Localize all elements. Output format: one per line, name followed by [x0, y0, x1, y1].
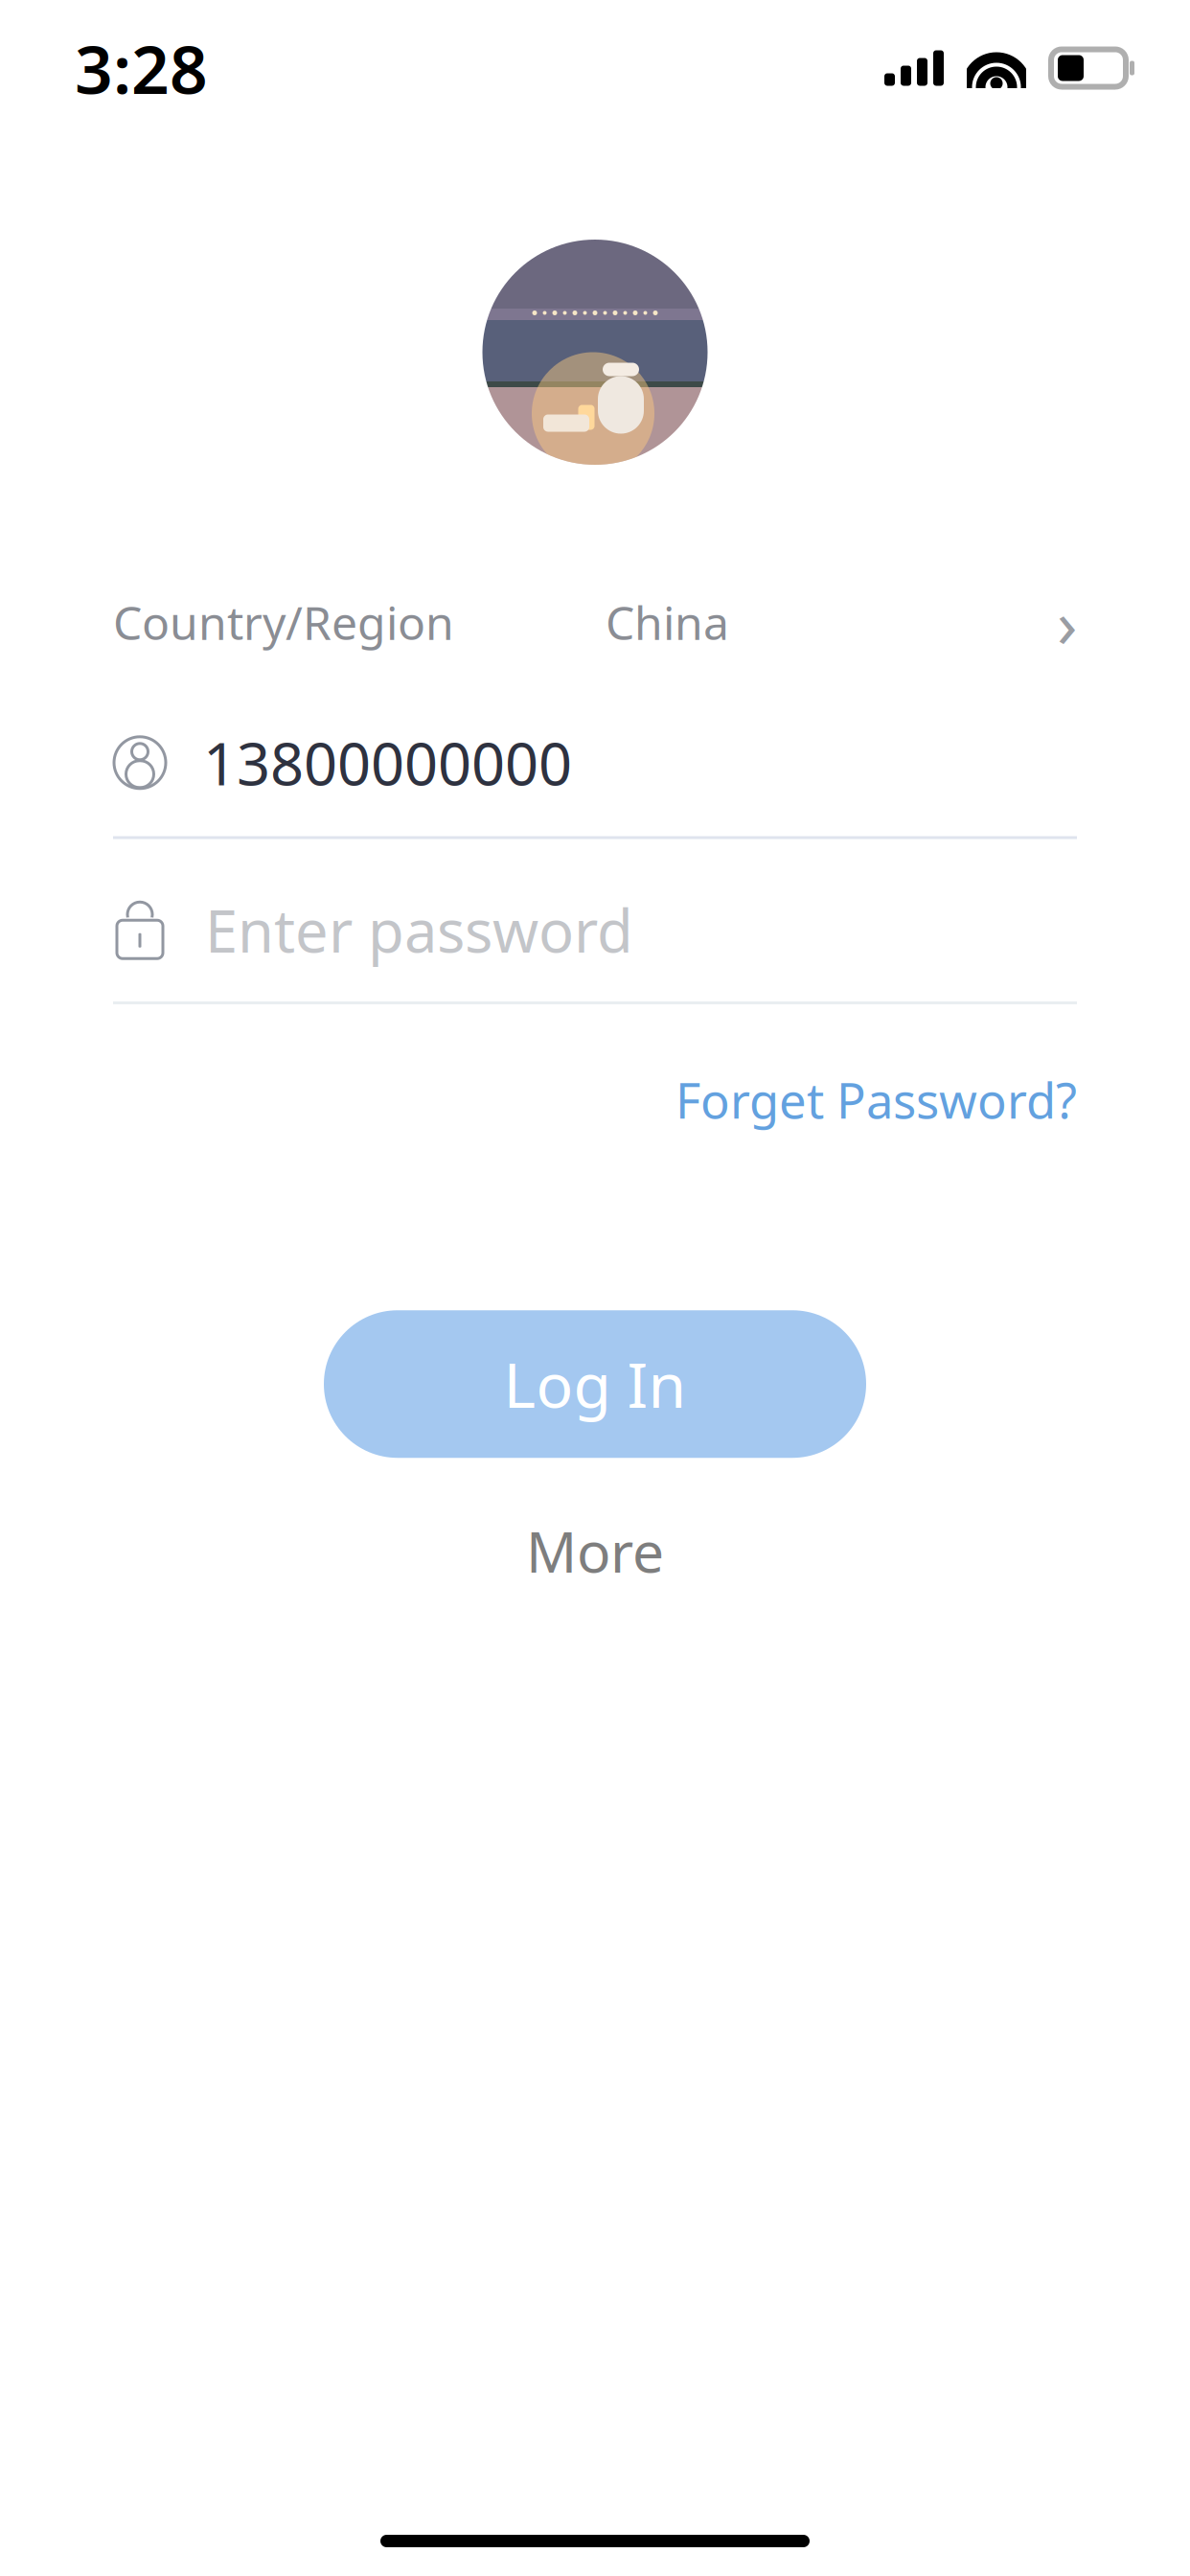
staticText: ›: [1057, 578, 1077, 666]
button[interactable]: Enter password: [0, 891, 1190, 969]
staticText: 3:28: [75, 24, 208, 112]
button[interactable]: Log In: [324, 1310, 866, 1458]
button[interactable]: More: [488, 1502, 702, 1600]
staticText: 13800000000: [203, 724, 572, 802]
staticText: China: [606, 591, 729, 653]
staticText: Country/Region: [113, 591, 454, 653]
staticText: More: [526, 1513, 664, 1588]
button[interactable]: Country/Region: [0, 578, 1190, 666]
staticText: Log In: [503, 1343, 687, 1425]
button[interactable]: Forget Password?: [675, 1058, 1077, 1142]
staticText: Enter password: [205, 891, 633, 969]
staticText: Forget Password?: [675, 1068, 1077, 1132]
